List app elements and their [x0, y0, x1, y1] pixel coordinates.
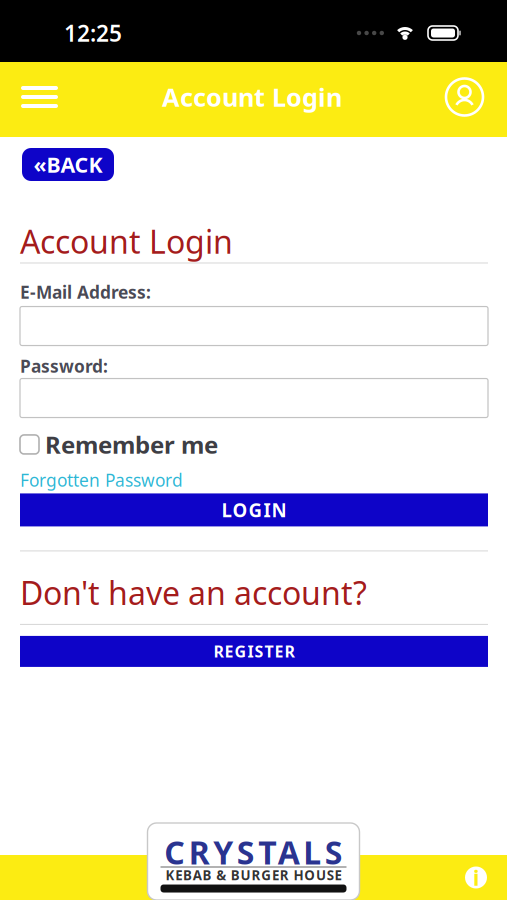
- button[interactable]: REGISTER: [20, 636, 488, 667]
- staticText: Account Login: [162, 80, 342, 114]
- button[interactable]: Forgotten Password: [20, 468, 183, 491]
- staticText: Account Login: [20, 220, 233, 262]
- staticText: CRYSTALS: [164, 831, 343, 873]
- staticText: Forgotten Password: [20, 468, 183, 491]
- staticText: «BACK: [33, 150, 102, 179]
- staticText: E-Mail Address:: [20, 280, 151, 303]
- staticText: 12:25: [64, 18, 122, 48]
- button[interactable]: Account: [446, 78, 507, 115]
- staticText: i: [473, 863, 479, 892]
- staticText: Remember me: [45, 428, 218, 460]
- staticText: REGISTER: [213, 641, 294, 662]
- staticText: LOGIN: [221, 497, 286, 522]
- staticText: Don't have an account?: [20, 571, 367, 614]
- button[interactable]: Info: [465, 863, 507, 892]
- button[interactable]: LOGIN: [20, 493, 488, 526]
- button[interactable]: Back: [22, 148, 114, 181]
- staticText: KEBAB & BURGER HOUSE: [165, 866, 342, 884]
- button[interactable]: Menu: [0, 86, 58, 108]
- staticText: Password:: [20, 354, 108, 377]
- button[interactable]: Remember me: [20, 428, 218, 460]
